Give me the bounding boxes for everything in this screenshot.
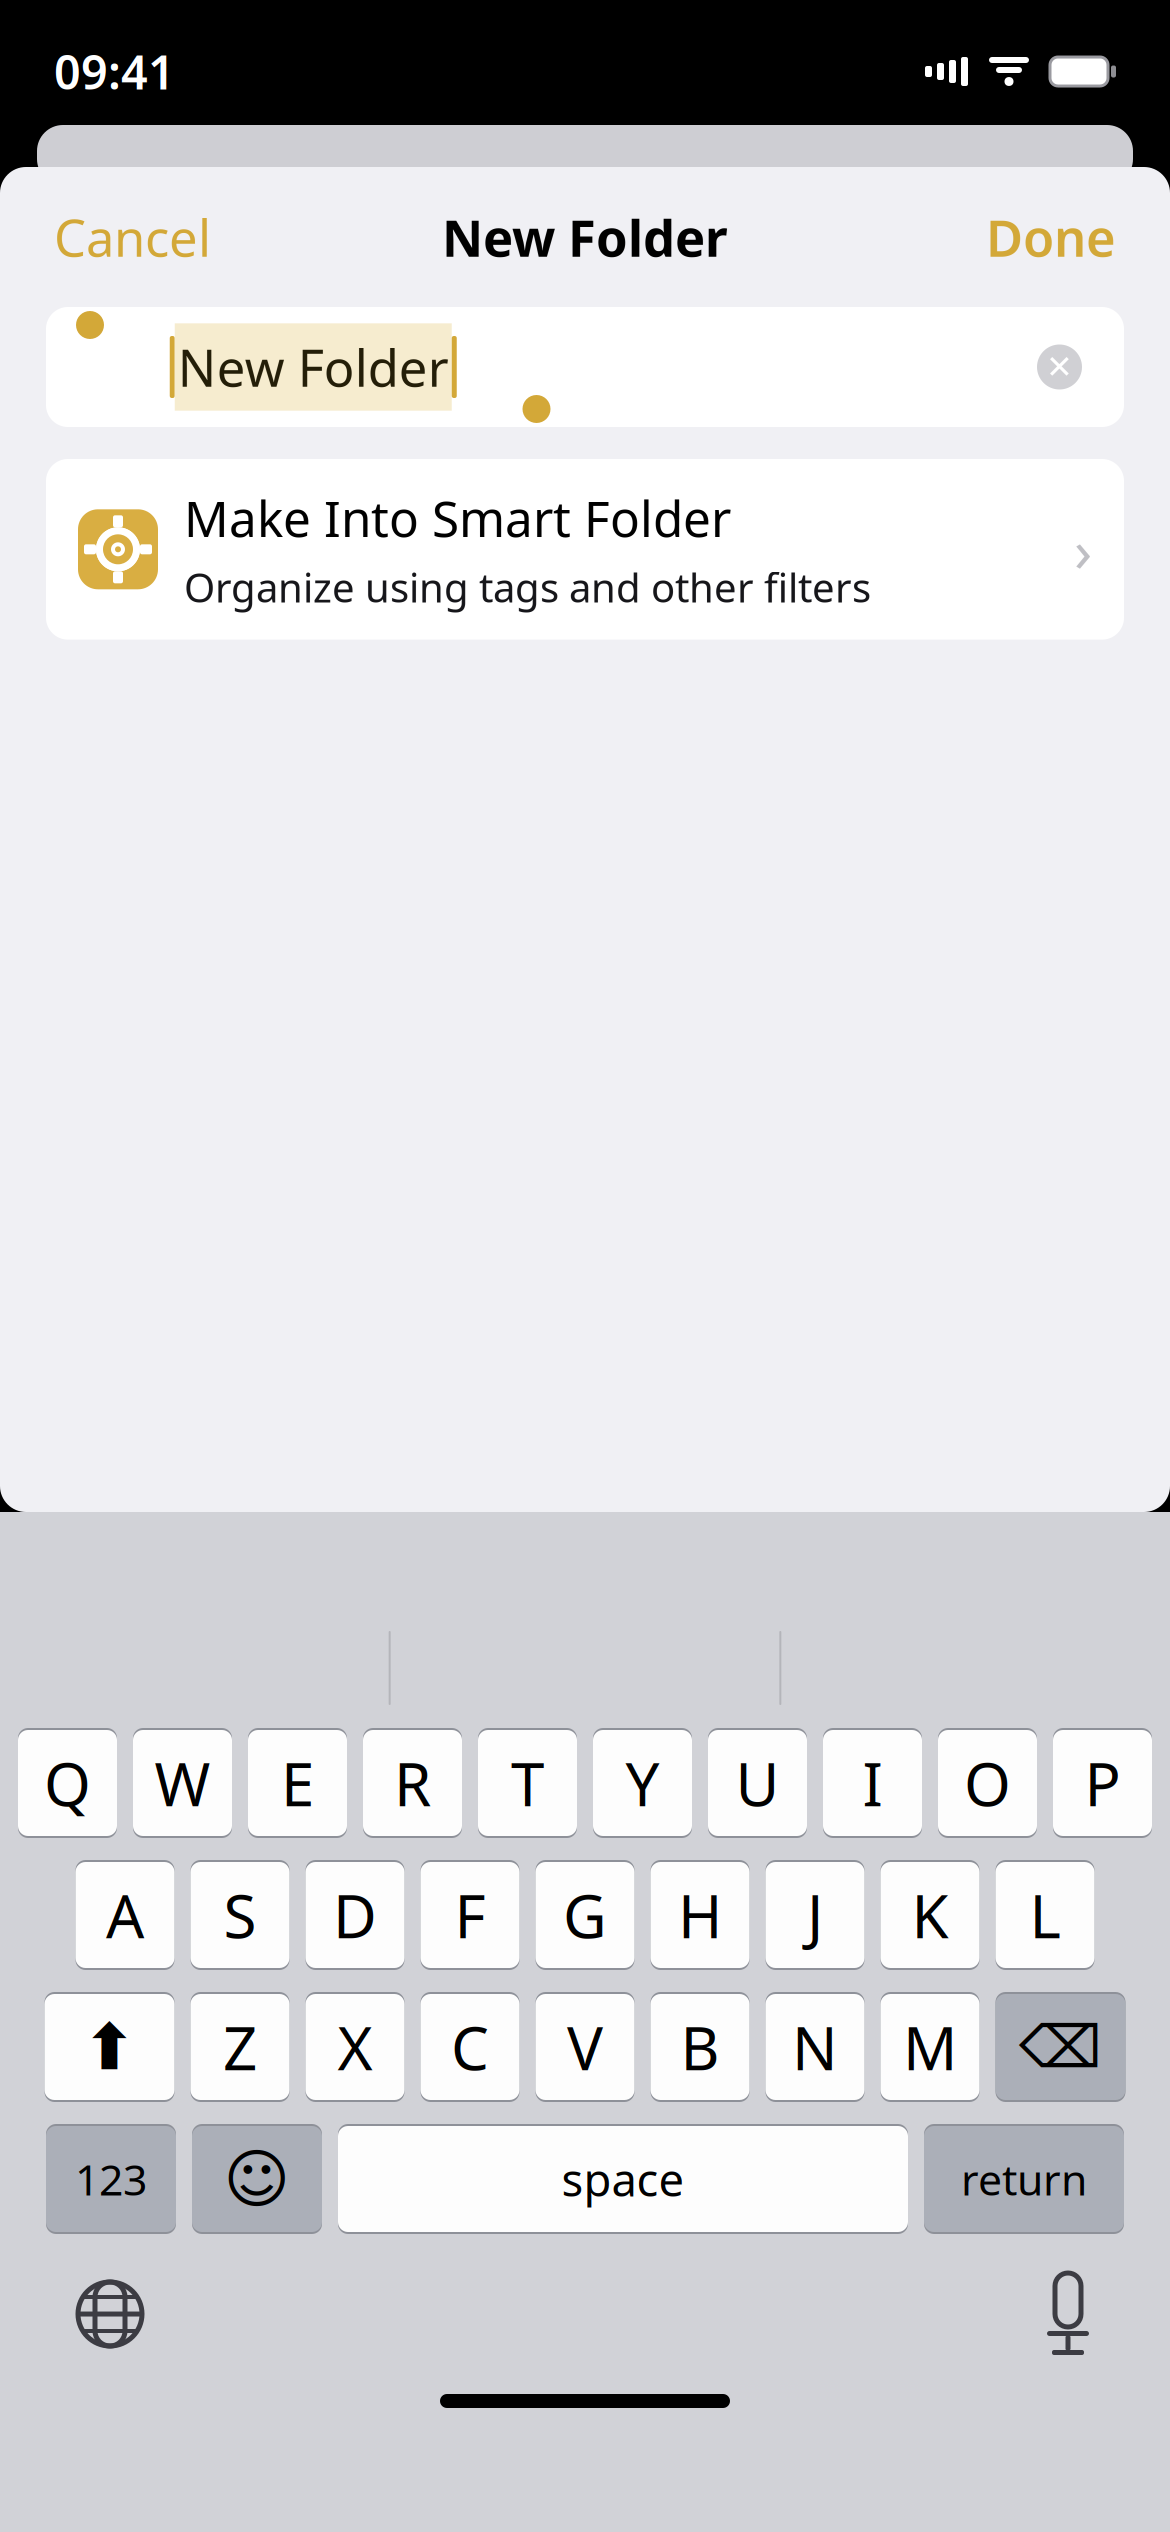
staticText: M (903, 2007, 957, 2087)
staticText: Y (625, 1743, 659, 1823)
staticText: Make Into Smart Folder (184, 485, 731, 550)
staticText: B (680, 2007, 719, 2087)
button[interactable]: B (650, 1992, 749, 2102)
button[interactable]: H (650, 1860, 749, 1970)
button[interactable]: C (420, 1992, 519, 2102)
staticText: D (333, 1875, 377, 1955)
staticText: 123 (75, 2151, 147, 2207)
button[interactable]: Z (190, 1992, 289, 2102)
button[interactable]: O (938, 1728, 1037, 1838)
staticText: 09:41 (54, 40, 175, 102)
button[interactable]: V (535, 1992, 634, 2102)
staticText: T (511, 1743, 544, 1823)
button[interactable]: Make Into Smart Folder (46, 459, 1124, 640)
button[interactable]: L (995, 1860, 1094, 1970)
button[interactable]: Emoji (192, 2124, 322, 2234)
button[interactable]: A (75, 1860, 174, 1970)
button[interactable]: X (305, 1992, 404, 2102)
staticText: E (281, 1743, 314, 1823)
button[interactable]: K (880, 1860, 979, 1970)
button[interactable]: space (338, 2124, 908, 2234)
button[interactable]: R (363, 1728, 462, 1838)
staticText: A (106, 1875, 144, 1955)
button[interactable]: Y (593, 1728, 692, 1838)
staticText: W (154, 1743, 210, 1823)
button[interactable]: T (478, 1728, 577, 1838)
staticText: V (567, 2007, 603, 2087)
staticText: G (563, 1875, 607, 1955)
staticText: F (454, 1875, 485, 1955)
button[interactable]: Cancel (42, 189, 223, 285)
button[interactable]: Dictation (1018, 2242, 1118, 2386)
button[interactable]: Clear text (1025, 332, 1094, 401)
button[interactable]: W (133, 1728, 232, 1838)
button[interactable]: N (765, 1992, 864, 2102)
staticText: Cancel (54, 203, 211, 271)
staticText: New Folder (442, 203, 728, 271)
staticText: space (561, 2149, 684, 2209)
button[interactable]: Q (18, 1728, 117, 1838)
staticText: › (1074, 510, 1092, 588)
staticText: R (394, 1743, 431, 1823)
staticText: S (223, 1875, 256, 1955)
button[interactable]: return (924, 2124, 1124, 2234)
staticText: ☺ (223, 2143, 290, 2215)
staticText: K (911, 1875, 948, 1955)
staticText: H (678, 1875, 722, 1955)
staticText: X (337, 2007, 372, 2087)
staticText: Done (986, 203, 1116, 271)
button[interactable]: J (765, 1860, 864, 1970)
button[interactable]: E (248, 1728, 347, 1838)
staticText: Z (223, 2007, 257, 2087)
staticText: Q (44, 1743, 91, 1823)
button[interactable]: I (823, 1728, 922, 1838)
staticText: return (961, 2151, 1087, 2207)
staticText: ✕ (1046, 349, 1073, 385)
button[interactable]: M (880, 1992, 979, 2102)
staticText: ⬆ (82, 2011, 136, 2083)
staticText: Organize using tags and other filters (184, 560, 871, 614)
staticText: J (807, 1875, 823, 1955)
staticText: L (1029, 1875, 1060, 1955)
button[interactable]: Done (974, 189, 1128, 285)
staticText: O (964, 1743, 1011, 1823)
staticText: I (862, 1743, 882, 1823)
button[interactable]: Shift (44, 1992, 174, 2102)
button[interactable]: F (420, 1860, 519, 1970)
button[interactable]: G (535, 1860, 634, 1970)
button[interactable]: Next keyboard (52, 2256, 168, 2372)
button[interactable]: Delete (995, 1992, 1125, 2102)
staticText: New Folder (178, 333, 449, 401)
button[interactable]: P (1053, 1728, 1152, 1838)
button[interactable]: 123 (46, 2124, 176, 2234)
staticText: C (451, 2007, 489, 2087)
staticText: P (1084, 1743, 1120, 1823)
staticText: N (792, 2007, 838, 2087)
staticText: U (735, 1743, 779, 1823)
staticText: ⌫ (1019, 2014, 1102, 2080)
button[interactable]: S (190, 1860, 289, 1970)
button[interactable]: D (305, 1860, 404, 1970)
button[interactable]: U (708, 1728, 807, 1838)
